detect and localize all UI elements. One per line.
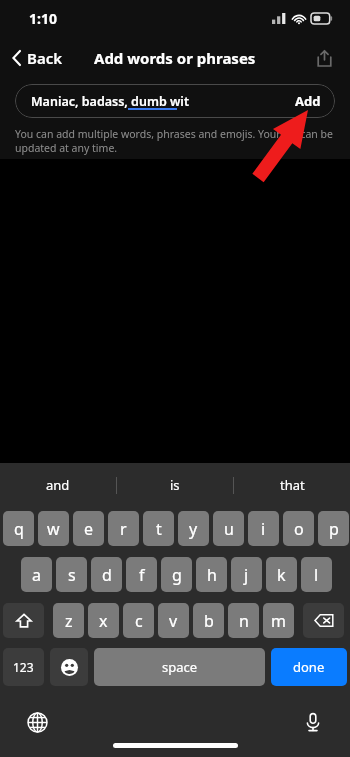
button[interactable]: is xyxy=(117,463,233,507)
button[interactable]: Voice input xyxy=(297,706,329,738)
button[interactable]: Shift xyxy=(3,603,44,638)
button[interactable]: o xyxy=(283,511,314,546)
staticText: You can add multiple words, phrases and … xyxy=(15,127,333,155)
button[interactable]: y xyxy=(178,511,209,546)
button[interactable]: 123 xyxy=(3,648,44,686)
staticText: m xyxy=(271,610,286,632)
button[interactable]: t xyxy=(143,511,174,546)
staticText: Back xyxy=(27,48,63,68)
button[interactable]: that xyxy=(234,463,350,507)
button[interactable]: z xyxy=(53,603,84,638)
staticText: q xyxy=(14,518,24,540)
button[interactable]: b xyxy=(193,603,224,638)
staticText: is xyxy=(170,476,180,494)
button[interactable]: j xyxy=(231,557,262,592)
button[interactable]: c xyxy=(123,603,154,638)
button[interactable]: Change keyboard xyxy=(21,706,53,738)
staticText: w xyxy=(47,518,60,540)
staticText: f xyxy=(139,564,145,586)
button[interactable]: Backspace xyxy=(303,603,344,638)
staticText: k xyxy=(277,564,286,586)
button[interactable]: e xyxy=(73,511,104,546)
staticText: that xyxy=(280,476,305,494)
button[interactable]: k xyxy=(266,557,297,592)
staticText: n xyxy=(239,610,249,632)
staticText: Maniac, badass, dumb wit xyxy=(31,93,189,110)
button[interactable]: d xyxy=(91,557,122,592)
staticText: t xyxy=(156,518,162,540)
staticText: z xyxy=(65,610,73,632)
staticText: Add xyxy=(295,92,321,110)
staticText: a xyxy=(32,564,41,586)
staticText: o xyxy=(294,518,304,540)
button[interactable]: g xyxy=(161,557,192,592)
button[interactable]: and xyxy=(0,463,116,507)
button[interactable]: Share xyxy=(308,42,340,74)
button[interactable]: v xyxy=(158,603,189,638)
button[interactable]: x xyxy=(88,603,119,638)
button[interactable]: h xyxy=(196,557,227,592)
staticText: r xyxy=(120,518,127,540)
button[interactable]: w xyxy=(38,511,69,546)
staticText: s xyxy=(68,564,76,586)
button[interactable]: i xyxy=(248,511,279,546)
button[interactable]: Maniac, badass, dumb wit xyxy=(15,84,335,118)
staticText: v xyxy=(169,610,178,632)
staticText: c xyxy=(135,610,143,632)
staticText: 123 xyxy=(13,659,34,675)
staticText: x xyxy=(99,610,108,632)
staticText: done xyxy=(293,658,325,676)
button[interactable]: space xyxy=(94,648,265,686)
staticText: i xyxy=(261,518,266,540)
button[interactable]: p xyxy=(318,511,349,546)
staticText: l xyxy=(314,564,319,586)
staticText: p xyxy=(329,518,339,540)
button[interactable]: r xyxy=(108,511,139,546)
staticText: y xyxy=(189,518,198,540)
staticText: 1:10 xyxy=(29,9,57,28)
button[interactable]: Back xyxy=(0,41,73,75)
button[interactable]: q xyxy=(3,511,34,546)
staticText: j xyxy=(244,564,249,586)
staticText: d xyxy=(102,564,112,586)
button[interactable]: n xyxy=(228,603,259,638)
button[interactable]: Emoji xyxy=(50,648,88,686)
button[interactable]: s xyxy=(56,557,87,592)
button[interactable]: u xyxy=(213,511,244,546)
button[interactable]: Add xyxy=(281,85,335,117)
staticText: h xyxy=(207,564,217,586)
staticText: e xyxy=(84,518,94,540)
button[interactable]: done xyxy=(271,648,347,686)
button[interactable]: l xyxy=(301,557,332,592)
staticText: Add words or phrases xyxy=(94,48,256,68)
button[interactable]: m xyxy=(263,603,294,638)
staticText: g xyxy=(172,564,182,586)
button[interactable]: f xyxy=(126,557,157,592)
button[interactable]: a xyxy=(21,557,52,592)
staticText: u xyxy=(224,518,234,540)
staticText: and xyxy=(46,476,70,494)
staticText: b xyxy=(204,610,214,632)
staticText: space xyxy=(162,658,198,676)
